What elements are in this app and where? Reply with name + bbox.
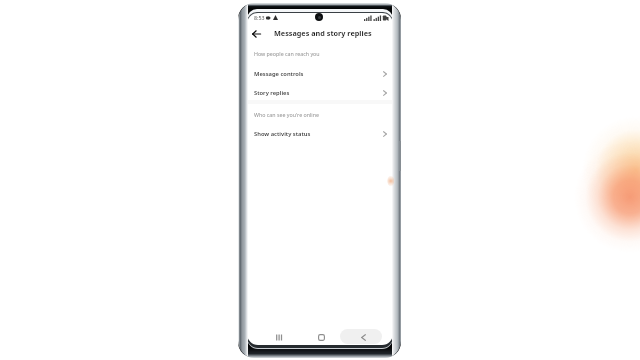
button[interactable]: Story replies (247, 83, 393, 103)
button[interactable]: Recents (259, 328, 299, 345)
button[interactable]: Back (343, 328, 383, 345)
staticText: Messages and story replies (274, 28, 372, 38)
button[interactable]: Show activity status (247, 124, 393, 144)
staticText: How people can reach you (254, 50, 320, 57)
button[interactable]: Back (248, 26, 264, 42)
staticText: Story replies (254, 89, 290, 97)
staticText: 8:53 (254, 14, 265, 21)
staticText: Show activity status (254, 130, 311, 138)
staticText: Message controls (254, 70, 304, 78)
button[interactable]: Message controls (247, 64, 393, 84)
button[interactable]: Home (301, 328, 341, 345)
staticText: Who can see you're online (254, 111, 319, 118)
